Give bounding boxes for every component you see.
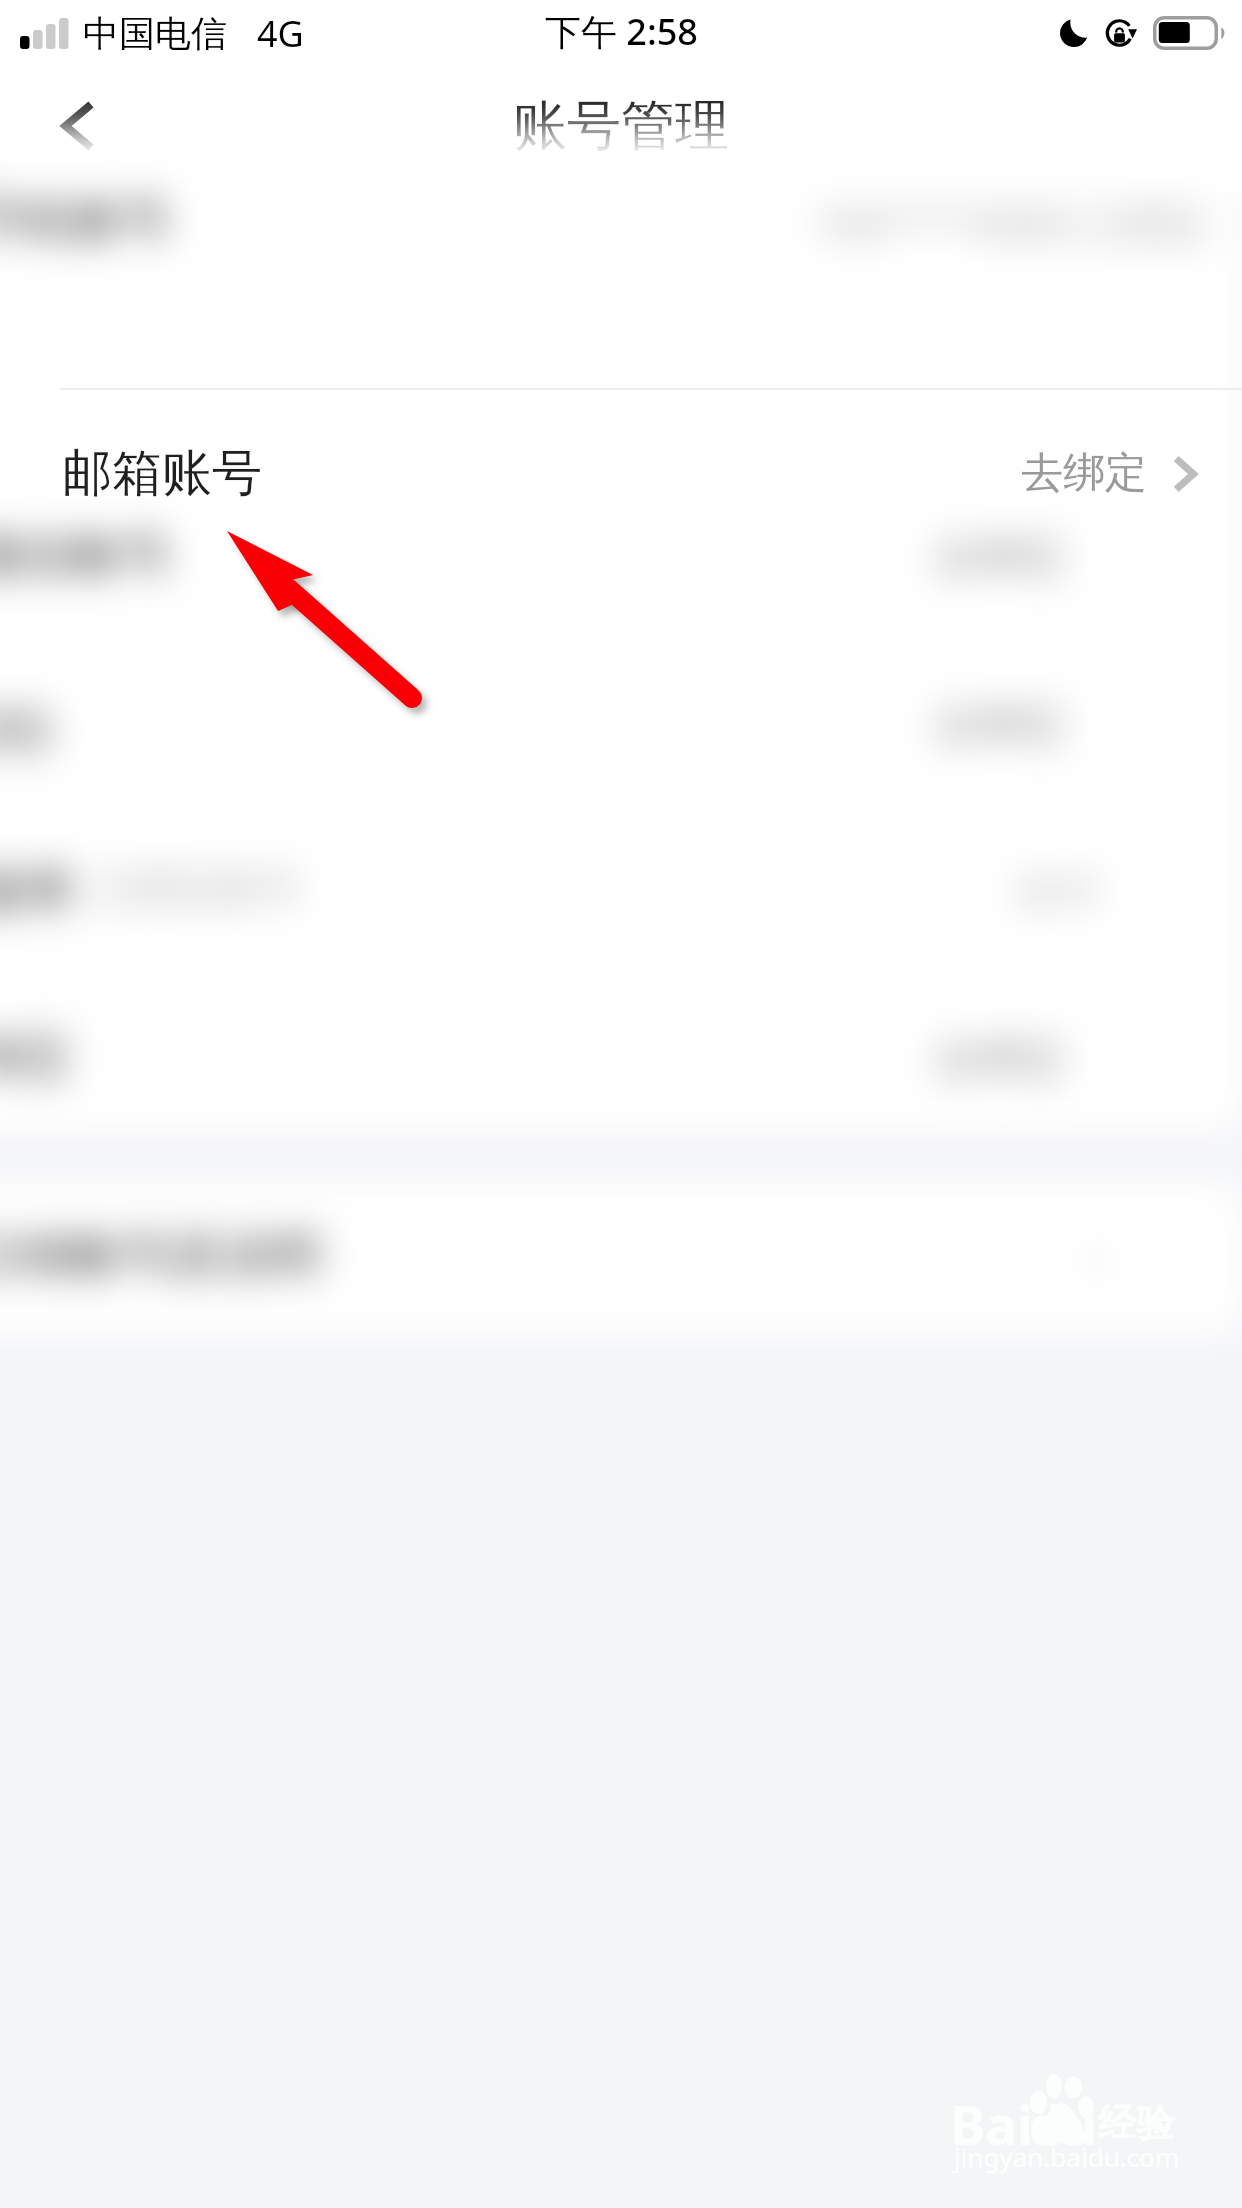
button[interactable]: 邮箱账号 [0, 390, 1242, 557]
staticText: Bai [950, 2088, 1033, 2160]
staticText: 去绑定 [932, 529, 1067, 586]
staticText: 经验 [1098, 2099, 1174, 2147]
staticText: 淘宝 [0, 1026, 72, 1089]
staticText: 去绑定 [932, 697, 1067, 754]
staticText: 已绑定账号 [90, 863, 300, 916]
staticText: du [1029, 2088, 1097, 2160]
staticText: 去绑定 [932, 1031, 1067, 1088]
staticText: 账号管理 [513, 92, 729, 160]
staticText: 注销账号及说明 [0, 1224, 322, 1287]
staticText: 邮箱账号 [62, 442, 262, 505]
staticText: 中国电信 [83, 11, 227, 56]
staticText: QQ [0, 692, 51, 760]
staticText: 下午 2:58 [545, 7, 698, 56]
staticText: 188****8888 已绑定 [812, 194, 1210, 251]
staticText: 手机账号 [0, 189, 172, 252]
staticText: 微博 [0, 860, 72, 923]
staticText: 4G [257, 9, 304, 58]
staticText: jingyan.baidu.com [954, 2139, 1180, 2174]
staticText: 微信账号 [0, 524, 172, 587]
staticText: 去绑定 [1021, 447, 1147, 500]
button[interactable]: Back [20, 71, 132, 183]
